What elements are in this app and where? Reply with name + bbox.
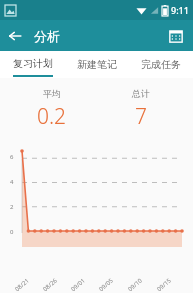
button[interactable]: 完成任务	[129, 51, 193, 78]
button[interactable]: 新建笔记	[65, 51, 129, 78]
staticText: 08/21	[13, 277, 31, 293]
staticText: 6	[10, 153, 14, 161]
button[interactable]: 总计	[96, 88, 185, 131]
staticText: 总计	[132, 88, 150, 99]
button[interactable]: 平均	[8, 88, 96, 131]
button[interactable]: 复习计划	[0, 51, 65, 78]
button[interactable]: Back	[0, 21, 30, 51]
staticText: 完成任务	[141, 58, 181, 71]
staticText: 平均	[43, 88, 61, 99]
staticText: 09/01	[69, 277, 87, 293]
staticText: 7	[135, 102, 147, 131]
button[interactable]: Calendar	[162, 22, 190, 50]
staticText: 分析	[34, 28, 60, 44]
staticText: 09/10	[126, 277, 144, 293]
staticText: 09/15	[155, 277, 173, 293]
staticText: 9:11	[171, 4, 189, 16]
staticText: 4	[10, 178, 14, 186]
staticText: 2	[10, 203, 14, 211]
staticText: 09/05	[97, 277, 115, 293]
staticText: 0	[10, 228, 14, 236]
staticText: 0.2	[37, 102, 67, 131]
staticText: 新建笔记	[77, 58, 117, 71]
staticText: 复习计划	[13, 57, 53, 70]
staticText: 08/26	[41, 277, 59, 293]
